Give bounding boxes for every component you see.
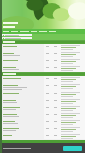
- button[interactable]: [0, 58, 85, 65]
- button[interactable]: [0, 51, 85, 58]
- button[interactable]: [0, 112, 85, 119]
- button[interactable]: [0, 133, 85, 139]
- button[interactable]: [0, 83, 85, 91]
- button[interactable]: [0, 40, 85, 44]
- button[interactable]: Contact us: [63, 146, 82, 151]
- button[interactable]: [2, 37, 32, 39]
- button[interactable]: [0, 119, 85, 126]
- button[interactable]: [2, 30, 10, 33]
- button[interactable]: [0, 91, 85, 98]
- button[interactable]: [0, 76, 85, 83]
- button[interactable]: [19, 30, 30, 33]
- button[interactable]: [38, 30, 48, 33]
- button[interactable]: [10, 30, 19, 33]
- button[interactable]: [48, 30, 57, 33]
- button[interactable]: [0, 72, 85, 76]
- button[interactable]: [0, 65, 85, 72]
- button[interactable]: [0, 105, 85, 112]
- button[interactable]: [30, 30, 38, 33]
- button[interactable]: [2, 34, 32, 36]
- button[interactable]: [0, 98, 85, 105]
- button[interactable]: [0, 44, 85, 51]
- button[interactable]: [0, 126, 85, 133]
